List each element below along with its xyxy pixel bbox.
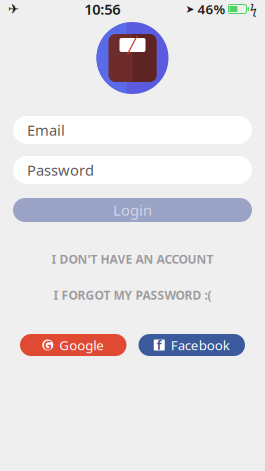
staticText: Facebook bbox=[171, 336, 230, 354]
button[interactable]: f bbox=[138, 334, 245, 356]
staticText: 10:56 bbox=[84, 0, 120, 19]
staticText: Password bbox=[27, 160, 94, 180]
staticText: G bbox=[43, 337, 52, 353]
button[interactable]: Email bbox=[13, 116, 252, 144]
button[interactable]: I FORGOT MY PASSWORD :( bbox=[0, 288, 265, 302]
button[interactable]: G bbox=[20, 334, 126, 356]
staticText: ✈ bbox=[8, 1, 19, 16]
button[interactable]: I DON'T HAVE AN ACCOUNT bbox=[0, 252, 265, 266]
button[interactable]: Login bbox=[13, 198, 252, 222]
staticText: I DON'T HAVE AN ACCOUNT bbox=[51, 251, 213, 267]
staticText: ϟ bbox=[250, 1, 257, 17]
staticText: I FORGOT MY PASSWORD :( bbox=[53, 287, 211, 303]
staticText: Login bbox=[113, 200, 152, 220]
staticText: ➤ bbox=[185, 3, 194, 15]
staticText: 46% bbox=[197, 0, 225, 18]
staticText: Email bbox=[27, 120, 65, 140]
staticText: f bbox=[157, 337, 162, 353]
staticText: Google bbox=[59, 336, 104, 354]
button[interactable]: Password bbox=[13, 156, 252, 184]
staticText: ╱ bbox=[127, 36, 137, 54]
